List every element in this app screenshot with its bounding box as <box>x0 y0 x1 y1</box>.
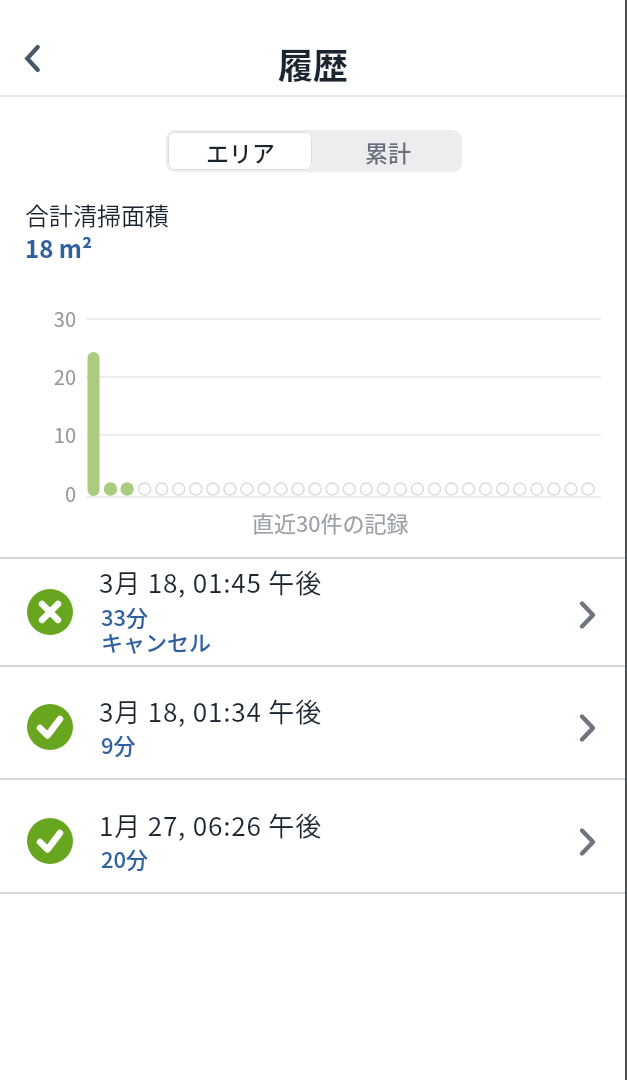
staticText: 9分 <box>101 728 136 760</box>
staticText: 10 <box>30 420 76 449</box>
staticText: 0 <box>30 479 76 508</box>
staticText: キャンセル <box>101 625 212 657</box>
staticText: 1月 27, 06:26 午後 <box>99 806 322 844</box>
staticText: 合計清掃面積 <box>25 197 169 232</box>
staticText: 30 <box>30 304 76 333</box>
button[interactable]: 3月 18, 01:45 午後 <box>0 559 627 665</box>
staticText: 直近30件の記録 <box>252 506 409 538</box>
staticText: 3月 18, 01:34 午後 <box>99 692 322 730</box>
staticText: エリア <box>206 135 275 168</box>
button[interactable]: 累計 <box>314 130 462 172</box>
button[interactable]: 1月 27, 06:26 午後 <box>0 780 627 892</box>
staticText: 履歴 <box>278 38 349 89</box>
staticText: 累計 <box>365 135 411 168</box>
staticText: 20 <box>30 362 76 391</box>
staticText: 20分 <box>101 842 149 874</box>
button[interactable]: 3月 18, 01:34 午後 <box>0 667 627 778</box>
staticText: 3月 18, 01:45 午後 <box>99 563 322 601</box>
staticText: 18 m² <box>25 230 93 265</box>
button[interactable]: エリア <box>168 132 312 170</box>
staticText: 33分 <box>101 600 149 632</box>
button[interactable] <box>10 36 54 80</box>
